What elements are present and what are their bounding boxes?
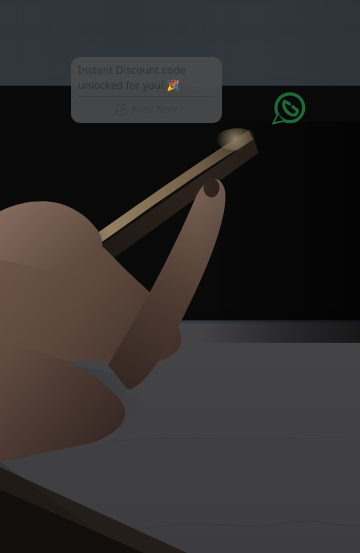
staticText: Instant Discount code — [78, 63, 186, 77]
button[interactable]: WhatsApp — [268, 88, 310, 130]
staticText: unlocked for you! 🎉 — [78, 78, 180, 92]
button[interactable]: Instant Discount code — [71, 57, 222, 123]
